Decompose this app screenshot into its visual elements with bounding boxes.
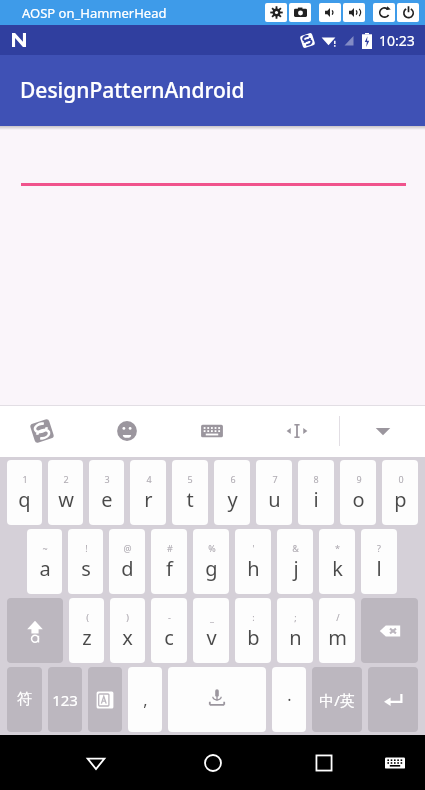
button[interactable]: :: [235, 598, 271, 663]
staticText: p: [394, 486, 407, 513]
staticText: y: [227, 486, 238, 513]
staticText: &: [292, 542, 299, 554]
button[interactable]: -: [151, 598, 187, 663]
button[interactable]: Back: [75, 742, 117, 784]
staticText: 1: [22, 473, 28, 485]
staticText: _: [210, 611, 214, 623]
button[interactable]: 123: [48, 667, 82, 732]
staticText: f: [166, 555, 173, 582]
staticText: #: [167, 542, 173, 554]
button[interactable]: ': [235, 529, 271, 594]
button[interactable]: ,: [128, 667, 162, 732]
button[interactable]: Hide keyboard: [340, 405, 425, 457]
staticText: m: [328, 624, 347, 651]
button[interactable]: Power: [397, 3, 419, 22]
button[interactable]: ?: [361, 529, 397, 594]
button[interactable]: Volume up: [343, 3, 365, 22]
button[interactable]: Settings: [265, 3, 287, 22]
button[interactable]: /: [319, 598, 355, 663]
staticText: q: [18, 486, 31, 513]
staticText: k: [332, 555, 343, 582]
staticText: !: [85, 542, 88, 554]
button[interactable]: 7: [256, 460, 292, 525]
button[interactable]: Input language: [88, 667, 122, 732]
staticText: s: [81, 555, 91, 582]
staticText: ~: [42, 542, 48, 554]
button[interactable]: Emoji: [84, 405, 169, 457]
staticText: i: [313, 486, 319, 513]
staticText: ;: [294, 611, 297, 623]
staticText: 8: [313, 473, 319, 485]
button[interactable]: Screenshot: [289, 3, 311, 22]
button[interactable]: ;: [277, 598, 313, 663]
staticText: ·: [287, 689, 292, 711]
button[interactable]: &: [277, 529, 313, 594]
button[interactable]: Home: [192, 742, 234, 784]
button[interactable]: Switch keyboard: [377, 745, 413, 781]
staticText: 6: [230, 473, 236, 485]
staticText: AOSP on_HammerHead: [22, 4, 167, 22]
button[interactable]: 4: [130, 460, 166, 525]
button[interactable]: Move cursor: [254, 405, 339, 457]
staticText: h: [247, 555, 260, 582]
button[interactable]: 2: [48, 460, 83, 525]
staticText: x: [122, 624, 133, 651]
staticText: w: [58, 486, 74, 513]
button[interactable]: 1: [7, 460, 42, 525]
staticText: 符: [17, 690, 32, 709]
button[interactable]: 3: [89, 460, 124, 525]
staticText: c: [164, 624, 174, 651]
button[interactable]: Keyboard layout: [169, 405, 254, 457]
button[interactable]: ·: [272, 667, 306, 732]
staticText: b: [247, 624, 260, 651]
button[interactable]: Shift: [7, 598, 63, 663]
button[interactable]: ): [110, 598, 145, 663]
button[interactable]: Space: [168, 667, 266, 732]
staticText: 4: [146, 473, 152, 485]
button[interactable]: *: [319, 529, 355, 594]
staticText: 123: [52, 690, 78, 710]
staticText: l: [376, 555, 382, 582]
button[interactable]: Recents: [303, 742, 345, 784]
button[interactable]: 6: [214, 460, 250, 525]
staticText: :: [252, 611, 255, 623]
staticText: *: [335, 542, 340, 554]
button[interactable]: 中/英: [312, 667, 362, 732]
button[interactable]: Sogou input: [0, 405, 84, 457]
button[interactable]: (: [69, 598, 104, 663]
staticText: (: [86, 611, 89, 623]
staticText: g: [205, 555, 218, 582]
staticText: t: [186, 486, 194, 513]
button[interactable]: _: [193, 598, 229, 663]
button[interactable]: !: [68, 529, 103, 594]
staticText: 3: [104, 473, 110, 485]
staticText: o: [352, 486, 365, 513]
staticText: @: [123, 542, 132, 554]
staticText: 2: [63, 473, 69, 485]
staticText: 7: [272, 473, 278, 485]
button[interactable]: 0: [382, 460, 418, 525]
button[interactable]: Rotate: [373, 3, 395, 22]
button[interactable]: 9: [340, 460, 376, 525]
button[interactable]: 符: [7, 667, 42, 732]
staticText: 中/英: [319, 690, 355, 710]
staticText: u: [268, 486, 281, 513]
button[interactable]: Volume down: [319, 3, 341, 22]
staticText: ): [126, 611, 129, 623]
staticText: r: [144, 486, 153, 513]
staticText: -: [168, 611, 171, 623]
button[interactable]: %: [193, 529, 229, 594]
button[interactable]: #: [151, 529, 187, 594]
staticText: DesignPatternAndroid: [20, 76, 245, 105]
button[interactable]: @: [109, 529, 145, 594]
button[interactable]: Backspace: [361, 598, 418, 663]
staticText: a: [39, 555, 51, 582]
button[interactable]: Enter: [368, 667, 418, 732]
button[interactable]: ~: [27, 529, 62, 594]
staticText: z: [82, 624, 92, 651]
staticText: ?: [377, 542, 381, 554]
button[interactable]: 5: [172, 460, 208, 525]
staticText: ': [252, 542, 255, 554]
button[interactable]: 8: [298, 460, 334, 525]
